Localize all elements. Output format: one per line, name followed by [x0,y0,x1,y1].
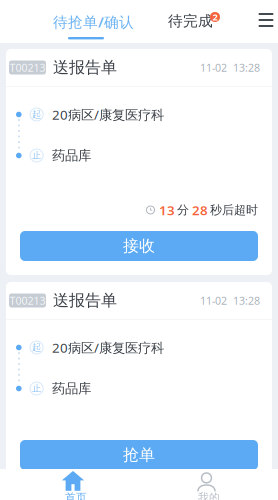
staticText: 分 [177,203,189,217]
button[interactable]: 接收 [20,231,258,261]
staticText: 送报告单 [53,58,117,77]
button[interactable]: 待抢单/确认 [50,0,138,43]
staticText: 20病区/康复医疗科 [52,106,164,123]
button[interactable]: Menu [254,8,278,32]
staticText: 止 [32,150,41,161]
button[interactable]: 待完成 [166,0,224,36]
staticText: 药品库 [52,380,91,397]
staticText: 药品库 [52,147,91,164]
staticText: 待抢单/确认 [53,12,134,31]
staticText: 20病区/康复医疗科 [52,339,164,356]
staticText: 2 [212,11,217,23]
staticText: 接收 [123,236,155,256]
staticText: 止 [32,383,41,394]
staticText: 28 [192,201,208,219]
staticText: 我的 [198,491,220,500]
button[interactable]: 抢单 [20,440,258,470]
staticText: 送报告单 [53,291,117,310]
staticText: 待完成 [168,12,213,30]
staticText: 起 [32,342,41,353]
button[interactable]: Home [0,469,139,500]
staticText: 秒后超时 [210,203,258,217]
staticText: 首页 [65,491,87,500]
staticText: 抢单 [123,445,155,465]
button[interactable]: Profile [139,469,278,500]
staticText: 11-02 13:28 [200,293,260,308]
staticText: T00213 [9,293,45,308]
staticText: 起 [32,109,41,120]
staticText: 11-02 13:28 [200,60,260,75]
staticText: 13 [159,201,175,219]
staticText: T00213 [9,60,45,75]
